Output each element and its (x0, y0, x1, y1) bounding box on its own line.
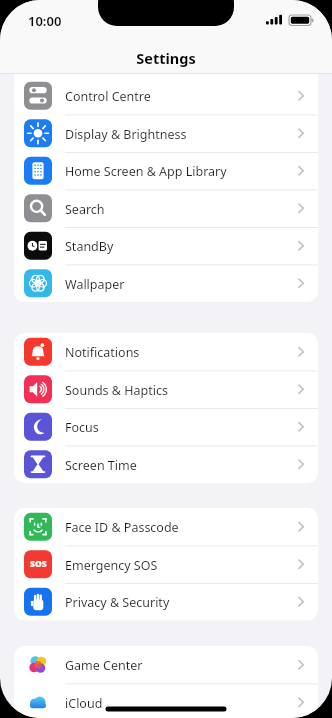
staticText: Focus (65, 419, 99, 436)
staticText: Home Screen & App Library (65, 163, 227, 180)
button[interactable]: Focus (14, 408, 318, 446)
staticText: Game Center (65, 657, 143, 674)
staticText: iCloud (65, 695, 103, 712)
staticText: Sounds & Haptics (65, 382, 168, 399)
staticText: Wallpaper (65, 276, 125, 293)
staticText: Screen Time (65, 457, 137, 474)
button[interactable]: Control Centre (14, 77, 318, 115)
button[interactable]: Screen Time (14, 446, 318, 484)
staticText: SOS (30, 558, 47, 570)
button[interactable]: Emergency SOS (14, 546, 318, 584)
staticText: StandBy (65, 238, 114, 255)
staticText: Face ID & Passcode (65, 519, 179, 536)
staticText: Display & Brightness (65, 126, 187, 143)
staticText: Notifications (65, 344, 140, 361)
button[interactable]: Face ID & Passcode (14, 508, 318, 546)
button[interactable]: Search (14, 190, 318, 228)
button[interactable]: Display & Brightness (14, 115, 318, 153)
button[interactable]: Home Screen & App Library (14, 152, 318, 190)
button[interactable]: Notifications (14, 333, 318, 371)
button[interactable]: Game Center (14, 646, 318, 684)
button[interactable]: Privacy & Security (14, 583, 318, 621)
button[interactable]: Wallpaper (14, 265, 318, 303)
staticText: Control Centre (65, 88, 151, 105)
button[interactable]: Sounds & Haptics (14, 371, 318, 409)
button[interactable]: StandBy (14, 227, 318, 265)
staticText: Emergency SOS (65, 557, 158, 574)
button[interactable]: iCloud (14, 684, 318, 718)
staticText: Search (65, 201, 105, 218)
staticText: Privacy & Security (65, 594, 170, 611)
staticText: Settings (136, 48, 196, 68)
staticText: 10:00 (28, 12, 62, 30)
